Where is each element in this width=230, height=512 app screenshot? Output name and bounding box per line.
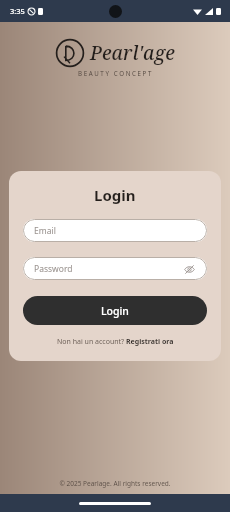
staticText: Login — [94, 185, 136, 205]
staticText: Password — [34, 263, 73, 275]
staticText: Email — [34, 225, 56, 237]
staticText: Non hai un account? — [57, 337, 126, 347]
button[interactable]: Non hai un account? — [57, 337, 174, 347]
staticText: Login — [101, 304, 129, 318]
staticText: B E A U T Y C O N C E P T — [78, 69, 152, 77]
button[interactable]: Email — [23, 219, 207, 242]
button[interactable]: Password — [23, 257, 207, 280]
staticText: Registrati ora — [126, 337, 174, 347]
staticText: © 2025 Pearlage. All rights reserved. — [0, 479, 230, 488]
staticText: Pearl'age — [90, 40, 175, 66]
staticText: 3:35 — [10, 6, 25, 16]
button[interactable]: Login — [23, 296, 207, 325]
button[interactable]: Show password — [182, 262, 196, 276]
